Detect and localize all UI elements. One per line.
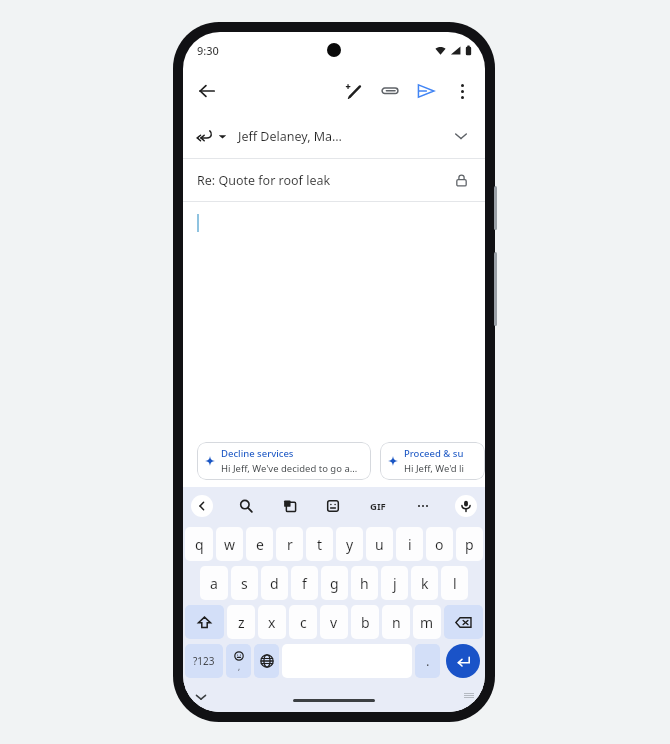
staticText: n	[392, 613, 401, 632]
staticText: c	[300, 613, 307, 632]
button[interactable]: w	[216, 527, 243, 561]
staticText: g	[330, 574, 339, 593]
staticText: Proceed & su	[404, 447, 464, 460]
button[interactable]: Close toolbar	[191, 495, 213, 517]
button[interactable]: l	[441, 566, 468, 600]
staticText: GIF	[370, 500, 386, 513]
button[interactable]: .	[415, 644, 440, 678]
button[interactable]: n	[382, 605, 410, 639]
staticText: s	[241, 574, 248, 593]
staticText: Jeff Delaney, Maria Lopez	[238, 128, 342, 145]
button[interactable]: y	[336, 527, 363, 561]
staticText: e	[256, 535, 264, 554]
button[interactable]: p	[456, 527, 483, 561]
staticText: t	[317, 535, 323, 554]
button[interactable]: More options	[444, 73, 480, 109]
button[interactable]: r	[276, 527, 303, 561]
staticText: p	[465, 535, 474, 554]
button[interactable]: m	[413, 605, 441, 639]
button[interactable]: d	[261, 566, 288, 600]
staticText: k	[421, 574, 429, 593]
staticText: u	[375, 535, 384, 554]
staticText: f	[302, 574, 307, 593]
button[interactable]: Confidential mode	[448, 167, 474, 193]
button[interactable]: Stickers	[279, 495, 301, 517]
staticText: ?123	[193, 654, 215, 668]
button[interactable]: h	[351, 566, 378, 600]
button[interactable]: Change keyboard	[461, 689, 477, 705]
button[interactable]: Send	[408, 73, 444, 109]
button[interactable]: Emoji	[322, 495, 344, 517]
staticText: Hi Jeff, We'd li	[404, 462, 464, 475]
button[interactable]: x	[258, 605, 286, 639]
button[interactable]: Expand recipients	[447, 122, 475, 150]
button[interactable]: g	[321, 566, 348, 600]
button[interactable]: Re: Quote for roof leak	[183, 159, 485, 201]
staticText: z	[238, 613, 245, 632]
button[interactable]: Search	[235, 495, 257, 517]
staticText: q	[195, 535, 204, 554]
button[interactable]: Attach file	[372, 73, 408, 109]
button[interactable]: q	[185, 527, 213, 561]
staticText: Decline services	[221, 447, 294, 460]
staticText: w	[224, 535, 236, 554]
button[interactable]: t	[306, 527, 333, 561]
staticText: i	[408, 535, 412, 554]
staticText: a	[210, 574, 218, 593]
staticText: b	[361, 613, 370, 632]
staticText: r	[287, 535, 293, 554]
button[interactable]: j	[381, 566, 408, 600]
button[interactable]: o	[426, 527, 453, 561]
staticText: ,	[238, 661, 241, 672]
button[interactable]: Proceed & su	[380, 442, 485, 480]
staticText: d	[270, 574, 279, 593]
staticText: m	[420, 613, 434, 632]
staticText: 9:30	[197, 43, 219, 58]
button[interactable]: a	[200, 566, 228, 600]
button[interactable]: Enter	[446, 644, 480, 678]
button[interactable]: u	[366, 527, 393, 561]
button[interactable]: GIF	[365, 495, 391, 517]
staticText: Hi Jeff, We've decided to go a…	[221, 462, 358, 475]
staticText: Re: Quote for roof leak	[197, 172, 331, 189]
button[interactable]: s	[231, 566, 258, 600]
button[interactable]: Emoji	[226, 644, 251, 678]
button[interactable]: e	[246, 527, 273, 561]
staticText: h	[360, 574, 369, 593]
button[interactable]: Shift	[185, 605, 224, 639]
button[interactable]: Switch language	[254, 644, 279, 678]
button[interactable]: Formatting	[336, 73, 372, 109]
staticText: y	[346, 535, 354, 554]
staticText: x	[268, 613, 276, 632]
staticText: v	[330, 613, 338, 632]
button[interactable]: v	[320, 605, 348, 639]
button[interactable]: Hide keyboard	[191, 687, 211, 707]
button[interactable]: More	[412, 495, 434, 517]
staticText: o	[435, 535, 444, 554]
button[interactable]: z	[227, 605, 255, 639]
button[interactable]: c	[289, 605, 317, 639]
button[interactable]: b	[351, 605, 379, 639]
button[interactable]: Jeff Delaney, Maria Lopez	[183, 114, 485, 158]
button[interactable]: f	[291, 566, 318, 600]
staticText: .	[426, 652, 430, 670]
button[interactable]: Back	[189, 73, 225, 109]
button[interactable]: Backspace	[444, 605, 483, 639]
staticText: l	[453, 574, 457, 593]
button[interactable]: i	[396, 527, 423, 561]
button[interactable]: Voice input	[455, 495, 477, 517]
staticText: j	[393, 574, 397, 593]
button[interactable]: Decline services	[197, 442, 371, 480]
button[interactable]: k	[411, 566, 438, 600]
button[interactable]: ?123	[185, 644, 223, 678]
